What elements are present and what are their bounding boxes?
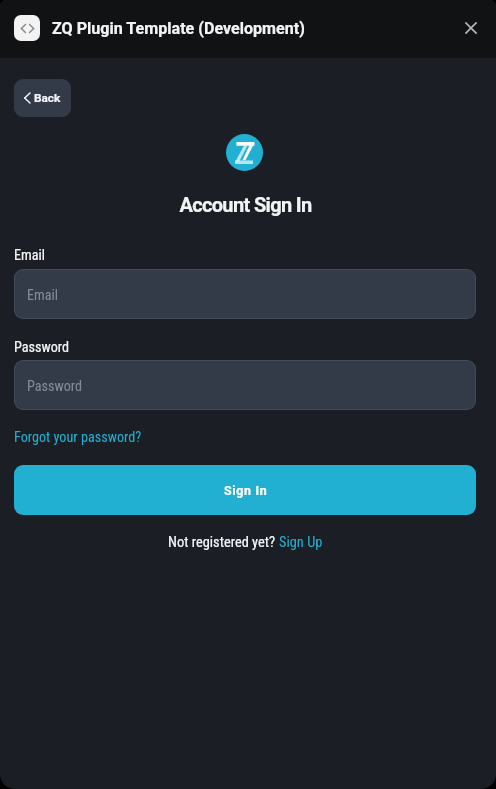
button[interactable]: Close	[454, 12, 488, 46]
staticText: ZQ Plugin Template (Development)	[52, 19, 305, 38]
staticText: Email	[27, 287, 59, 304]
button[interactable]: Email	[14, 269, 476, 319]
staticText: Email	[14, 247, 46, 264]
button[interactable]: Plugin code	[14, 15, 40, 41]
staticText: Not registered yet?	[168, 534, 279, 551]
staticText: Account Sign In	[179, 193, 312, 216]
staticText: Sign In	[224, 483, 268, 498]
staticText: Back	[34, 91, 61, 105]
staticText: Password	[27, 378, 83, 395]
button[interactable]: Forgot your password?	[14, 429, 142, 446]
staticText: Password	[14, 339, 70, 356]
button[interactable]: Password	[14, 360, 476, 410]
button[interactable]: Sign In	[14, 465, 476, 515]
button[interactable]: Sign Up	[279, 534, 323, 551]
button[interactable]: Back	[14, 79, 71, 117]
